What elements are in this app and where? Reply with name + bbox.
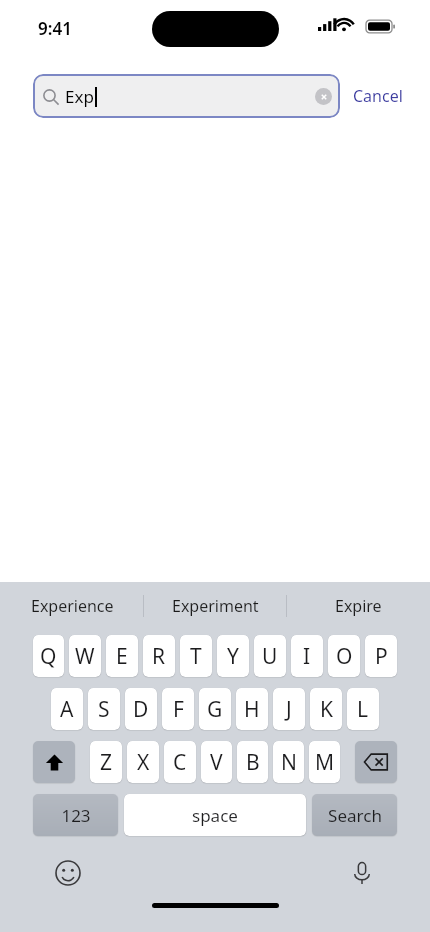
button[interactable]: D	[125, 688, 157, 730]
staticText: L	[357, 695, 369, 724]
button[interactable]: V	[201, 741, 232, 783]
staticText: P	[375, 642, 388, 671]
button[interactable]: M	[309, 741, 340, 783]
staticText: I	[303, 642, 311, 671]
button[interactable]: A	[51, 688, 83, 730]
staticText: N	[281, 748, 297, 777]
staticText: J	[286, 695, 292, 724]
button[interactable]: R	[143, 635, 175, 677]
button[interactable]: Shift	[33, 741, 75, 783]
staticText: O	[336, 642, 353, 671]
button[interactable]: Cancel	[340, 74, 416, 118]
button[interactable]: Search	[312, 794, 397, 836]
staticText: Expire	[335, 595, 382, 617]
button[interactable]: Clear text	[315, 88, 332, 105]
button[interactable]: O	[328, 635, 360, 677]
staticText: S	[98, 695, 110, 724]
button[interactable]: H	[236, 688, 268, 730]
button[interactable]: L	[347, 688, 379, 730]
staticText: X	[137, 748, 150, 777]
button[interactable]: Z	[90, 741, 122, 783]
button[interactable]: U	[254, 635, 286, 677]
button[interactable]: Y	[217, 635, 249, 677]
staticText: G	[207, 695, 223, 724]
button[interactable]: G	[199, 688, 231, 730]
staticText: V	[210, 748, 223, 777]
button[interactable]: C	[164, 741, 196, 783]
staticText: Experience	[31, 595, 114, 617]
button[interactable]: T	[180, 635, 212, 677]
staticText: W	[75, 642, 95, 671]
button[interactable]: space	[124, 794, 306, 836]
button[interactable]: B	[237, 741, 268, 783]
button[interactable]: Emoji keyboard	[48, 853, 88, 893]
staticText: E	[116, 642, 128, 671]
button[interactable]: Backspace	[355, 741, 397, 783]
button[interactable]: J	[273, 688, 305, 730]
staticText: K	[320, 695, 333, 724]
button[interactable]: Experiment	[144, 582, 287, 630]
staticText: Search	[328, 804, 382, 827]
staticText: R	[152, 642, 166, 671]
staticText: U	[262, 642, 278, 671]
staticText: Y	[227, 642, 239, 671]
staticText: 9:41	[38, 17, 72, 40]
button[interactable]: W	[69, 635, 101, 677]
button[interactable]: Expire	[287, 582, 430, 630]
staticText: Cancel	[353, 85, 403, 107]
staticText: M	[315, 748, 335, 777]
button[interactable]: Q	[33, 635, 64, 677]
button[interactable]: N	[273, 741, 304, 783]
staticText: B	[246, 748, 260, 777]
staticText: Experiment	[172, 595, 259, 617]
button[interactable]: S	[88, 688, 120, 730]
staticText: D	[133, 695, 149, 724]
staticText: F	[173, 695, 184, 724]
button[interactable]: K	[310, 688, 342, 730]
button[interactable]: Exp	[33, 74, 340, 118]
button[interactable]: 123	[33, 794, 118, 836]
button[interactable]: E	[106, 635, 138, 677]
staticText: Exp	[65, 85, 94, 108]
button[interactable]: Dictation	[342, 853, 382, 893]
button[interactable]: I	[291, 635, 323, 677]
staticText: space	[192, 804, 238, 827]
staticText: T	[190, 642, 202, 671]
staticText: H	[244, 695, 260, 724]
staticText: Z	[100, 748, 113, 777]
staticText: A	[60, 695, 74, 724]
button[interactable]: Experience	[0, 582, 144, 630]
button[interactable]: P	[365, 635, 397, 677]
staticText: 123	[61, 804, 91, 827]
button[interactable]: F	[162, 688, 194, 730]
staticText: C	[173, 748, 187, 777]
button[interactable]: X	[127, 741, 159, 783]
staticText: Q	[40, 642, 57, 671]
